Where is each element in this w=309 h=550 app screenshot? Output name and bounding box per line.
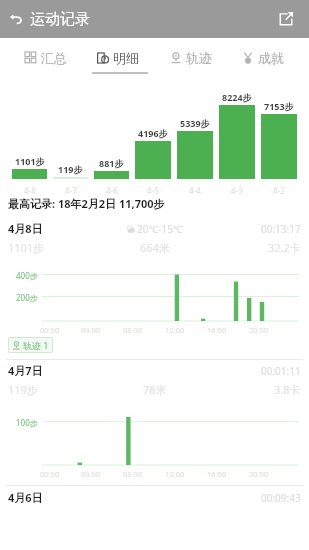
button[interactable]: 汇总 xyxy=(20,44,72,72)
staticText: 4-7 xyxy=(65,185,77,196)
staticText: 08:00 xyxy=(123,469,143,479)
staticText: 08:00 xyxy=(123,325,143,335)
staticText: 00:09:43 xyxy=(261,491,301,505)
other: Back xyxy=(8,12,23,27)
staticText: 4-4 xyxy=(189,185,201,196)
staticText: 04:00 xyxy=(81,325,101,335)
staticText: 4月7日 xyxy=(8,363,43,378)
staticText: 8224步 xyxy=(222,91,252,103)
button[interactable]: 成就 xyxy=(237,44,289,72)
staticText: 78米 xyxy=(143,382,167,397)
button[interactable]: 明细 xyxy=(92,44,144,72)
staticText: 00:00 xyxy=(40,469,60,479)
staticText: 4-2 xyxy=(273,185,285,196)
staticText: 最高记录: 18年2月2日 11,700步 xyxy=(8,196,165,211)
button[interactable]: 4月7日 xyxy=(0,360,309,400)
staticText: 32.2卡 xyxy=(268,240,301,255)
staticText: 7153步 xyxy=(264,100,294,112)
staticText: 1101步 xyxy=(15,155,45,167)
staticText: 12:00 xyxy=(165,469,185,479)
staticText: 轨迹 1 xyxy=(23,339,49,351)
staticText: 200步 xyxy=(16,292,38,303)
button[interactable]: 轨迹 1 xyxy=(8,337,53,353)
staticText: 20:00 xyxy=(249,469,269,479)
staticText: 4-3 xyxy=(231,185,243,196)
button[interactable]: 4月8日 xyxy=(0,218,309,258)
staticText: 4月6日 xyxy=(8,490,43,505)
staticText: 119步 xyxy=(58,163,83,175)
staticText: 明细 xyxy=(113,50,139,66)
staticText: 5339步 xyxy=(180,117,210,129)
staticText: 16:00 xyxy=(207,469,227,479)
staticText: 16:00 xyxy=(207,325,227,335)
staticText: 20℃-15℃ xyxy=(137,222,183,236)
staticText: 04:00 xyxy=(81,469,101,479)
staticText: 成就 xyxy=(258,50,284,66)
staticText: 1101步 xyxy=(8,240,45,255)
staticText: 00:00 xyxy=(40,325,60,335)
staticText: 00:13:17 xyxy=(261,222,301,236)
staticText: 20:00 xyxy=(249,325,269,335)
staticText: 12:00 xyxy=(165,325,185,335)
button[interactable]: Back xyxy=(0,5,96,34)
button[interactable]: 4月6日 xyxy=(0,486,309,509)
staticText: 400步 xyxy=(16,270,38,281)
staticText: 汇总 xyxy=(41,50,67,66)
staticText: 881步 xyxy=(99,157,124,169)
staticText: 00:01:11 xyxy=(261,364,301,378)
staticText: 4196步 xyxy=(138,127,168,139)
staticText: 664米 xyxy=(140,240,170,255)
staticText: 100步 xyxy=(16,417,38,428)
staticText: 运动记录 xyxy=(30,10,90,29)
staticText: 4-5 xyxy=(147,185,159,196)
staticText: 4-8 xyxy=(24,185,36,196)
staticText: 轨迹 xyxy=(186,50,212,66)
staticText: 4月8日 xyxy=(8,221,43,236)
staticText: 119步 xyxy=(8,382,38,397)
button[interactable]: 轨迹 xyxy=(165,44,217,72)
button[interactable]: Share xyxy=(271,4,301,34)
staticText: 3.8卡 xyxy=(274,382,301,397)
staticText: 4-6 xyxy=(106,185,118,196)
